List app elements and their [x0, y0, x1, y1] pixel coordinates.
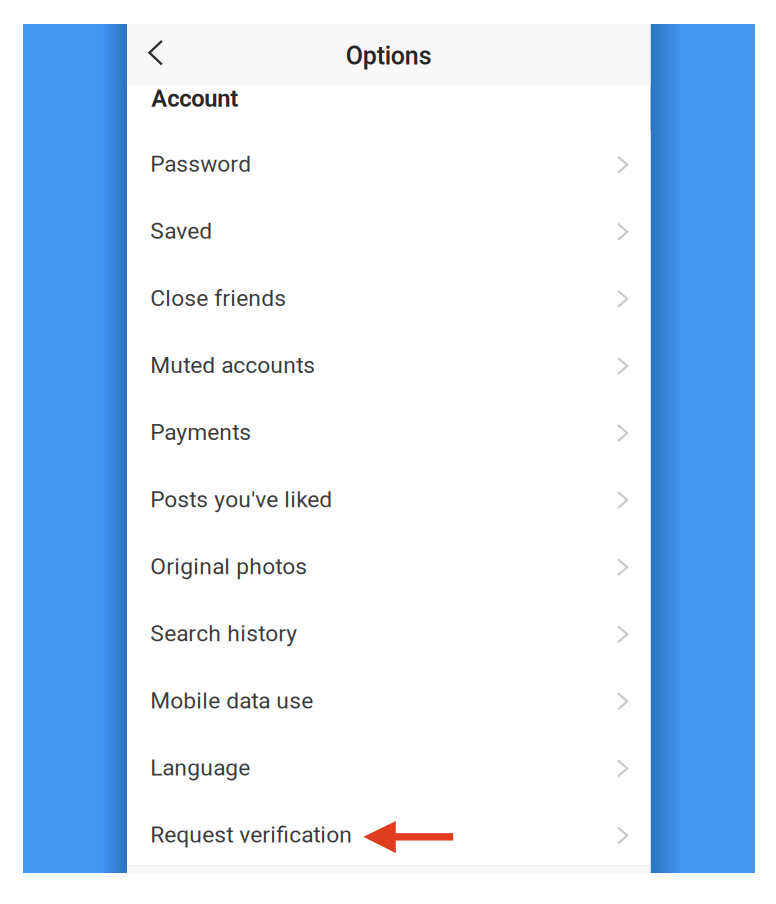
staticText: Account [151, 85, 238, 112]
button[interactable]: Saved [127, 197, 650, 265]
staticText: Options [346, 41, 432, 71]
button[interactable]: Close friends [127, 265, 650, 332]
staticText: Saved [150, 218, 212, 244]
button[interactable]: Original photos [127, 533, 650, 600]
button[interactable]: Posts you've liked [127, 466, 650, 533]
button[interactable]: Back [127, 24, 185, 86]
staticText: Muted accounts [150, 352, 315, 379]
staticText: Language [150, 754, 250, 781]
staticText: Original photos [150, 553, 307, 580]
button[interactable]: Request verification [127, 801, 650, 868]
staticText: Password [150, 151, 251, 177]
staticText: Close friends [150, 285, 286, 311]
button[interactable]: Password [127, 130, 650, 198]
staticText: Payments [150, 419, 251, 446]
button[interactable]: Search history [127, 600, 650, 667]
button[interactable]: Mobile data use [127, 667, 650, 734]
staticText: Posts you've liked [150, 486, 332, 513]
button[interactable]: Payments [127, 399, 650, 466]
button[interactable]: Language [127, 734, 650, 801]
staticText: Request verification [150, 821, 352, 848]
button[interactable]: Muted accounts [127, 332, 650, 399]
staticText: Search history [150, 620, 297, 647]
staticText: Mobile data use [150, 687, 313, 714]
